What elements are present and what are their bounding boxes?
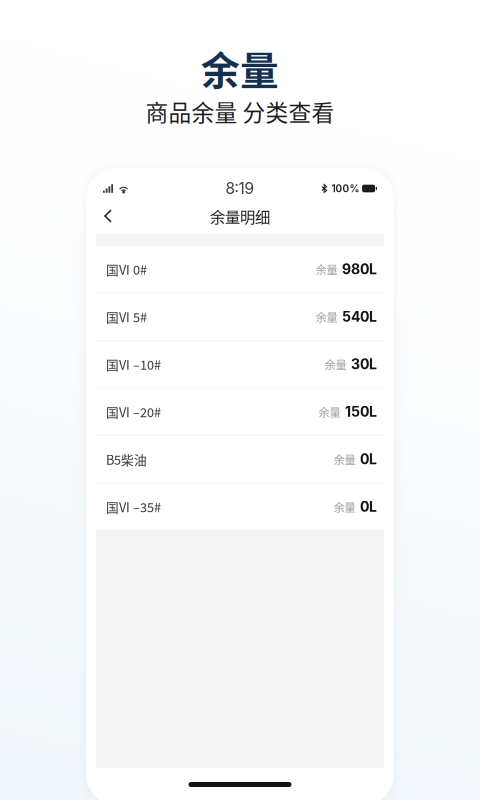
staticText: 余量明细 bbox=[210, 205, 270, 227]
button[interactable]: 国VI –20# bbox=[96, 388, 384, 435]
staticText: B5柴油 bbox=[106, 450, 147, 468]
button[interactable]: B5柴油 bbox=[96, 436, 384, 482]
staticText: 100% bbox=[332, 182, 360, 195]
staticText: 0L bbox=[360, 451, 377, 468]
staticText: 国VI 0# bbox=[106, 260, 147, 278]
staticText: 0L bbox=[360, 498, 377, 515]
staticText: 余量 bbox=[333, 451, 355, 467]
staticText: 8:19 bbox=[225, 179, 254, 198]
staticText: 余量 bbox=[333, 498, 355, 515]
staticText: 980L bbox=[342, 261, 377, 278]
staticText: 国VI –10# bbox=[106, 355, 161, 373]
staticText: 30L bbox=[351, 356, 377, 373]
button[interactable]: 国VI 5# bbox=[96, 293, 384, 340]
staticText: 商品余量 分类查看 bbox=[145, 95, 334, 128]
staticText: 国VI –20# bbox=[106, 403, 161, 421]
button[interactable]: 国VI 0# bbox=[96, 246, 384, 292]
staticText: 余量 bbox=[315, 308, 337, 325]
button[interactable]: Back bbox=[97, 203, 119, 229]
staticText: 国VI –35# bbox=[106, 498, 161, 516]
staticText: 150L bbox=[345, 403, 377, 420]
staticText: 余量 bbox=[318, 403, 340, 420]
staticText: 余量 bbox=[324, 356, 346, 372]
staticText: 余量 bbox=[201, 40, 279, 96]
button[interactable]: 国VI –10# bbox=[96, 341, 384, 387]
staticText: 国VI 5# bbox=[106, 308, 147, 326]
staticText: 余量 bbox=[315, 261, 337, 277]
staticText: 540L bbox=[342, 308, 377, 325]
button[interactable]: 国VI –35# bbox=[96, 483, 384, 530]
